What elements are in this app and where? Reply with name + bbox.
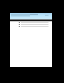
- button[interactable]: [10, 22, 52, 24]
- button[interactable]: [10, 24, 52, 26]
- button[interactable]: Toolbar: [10, 20, 52, 22]
- button[interactable]: [10, 26, 52, 28]
- button[interactable]: App bar: [10, 13, 52, 20]
